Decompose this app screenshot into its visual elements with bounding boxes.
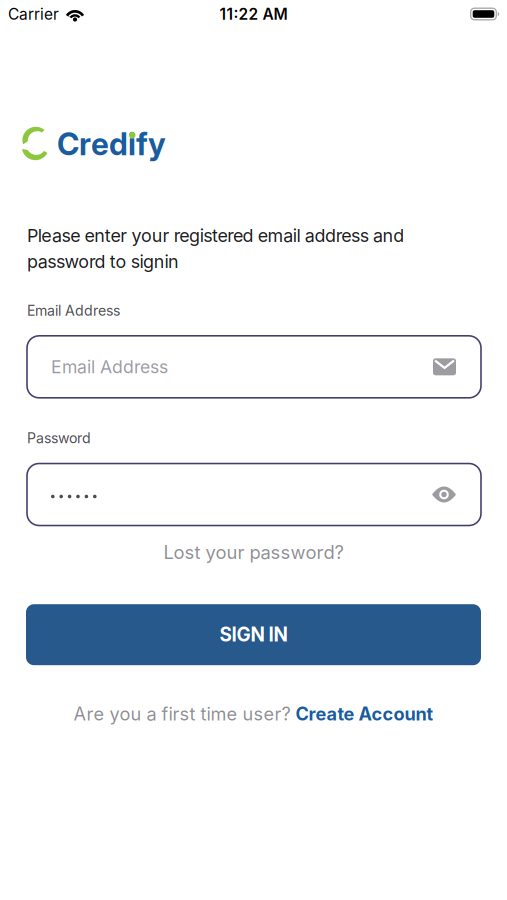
staticText: Are you a first time user? [73,703,290,725]
staticText: Please enter your registered email addre… [27,225,404,272]
staticText: Email Address [51,356,168,377]
staticText: Password [27,430,91,446]
staticText: SIGN IN [219,623,287,646]
staticText: Carrier [8,5,59,23]
staticText: 11:22 AM [219,5,287,23]
staticText: Credify [57,126,166,162]
staticText: Create Account [295,703,433,725]
staticText: Lost your password? [163,541,343,563]
staticText: Email Address [27,302,120,319]
